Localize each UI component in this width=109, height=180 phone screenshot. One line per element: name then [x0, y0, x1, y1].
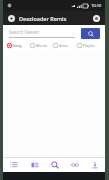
- staticText: 10:10: [91, 3, 102, 8]
- staticText: Playlist: [83, 43, 95, 48]
- staticText: Search Deezer: [9, 29, 40, 35]
- button[interactable]: Downloads: [85, 158, 105, 172]
- button[interactable]: Search: [81, 28, 100, 39]
- button[interactable]: Search: [45, 158, 65, 172]
- button[interactable]: Deezloader logo: [7, 14, 16, 23]
- button[interactable]: Playlist: [77, 43, 101, 48]
- button[interactable]: Album: [30, 43, 53, 48]
- button[interactable]: Library: [24, 158, 45, 172]
- staticText: Artist: [59, 43, 69, 48]
- button[interactable]: Song: [7, 43, 30, 48]
- button[interactable]: Account: [91, 13, 101, 23]
- button[interactable]: Tracks: [3, 158, 24, 172]
- staticText: Deezloader Remix: [19, 15, 91, 22]
- button[interactable]: Link: [65, 158, 85, 172]
- staticText: Song: [13, 43, 22, 48]
- staticText: Album: [36, 43, 48, 48]
- button[interactable]: Search Deezer: [9, 29, 81, 38]
- button[interactable]: Artist: [53, 43, 77, 48]
